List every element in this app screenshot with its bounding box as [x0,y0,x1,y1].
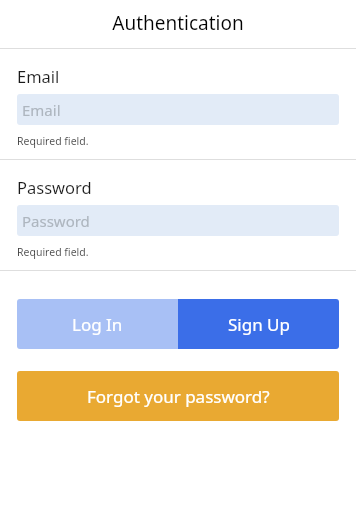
staticText: Password [22,211,90,231]
button[interactable]: Email [17,94,339,125]
staticText: Sign Up [228,313,290,336]
staticText: Log In [72,313,123,336]
staticText: Authentication [112,10,244,36]
button[interactable]: Sign Up [178,299,339,349]
staticText: Required field. [17,245,89,259]
staticText: Password [17,176,92,198]
staticText: Email [22,100,61,120]
staticText: Email [17,65,60,87]
staticText: Required field. [17,134,89,148]
button[interactable]: Log In [17,299,178,349]
button[interactable]: Forgot your password? [17,371,339,421]
staticText: Forgot your password? [87,385,270,408]
button[interactable]: Password [17,205,339,236]
